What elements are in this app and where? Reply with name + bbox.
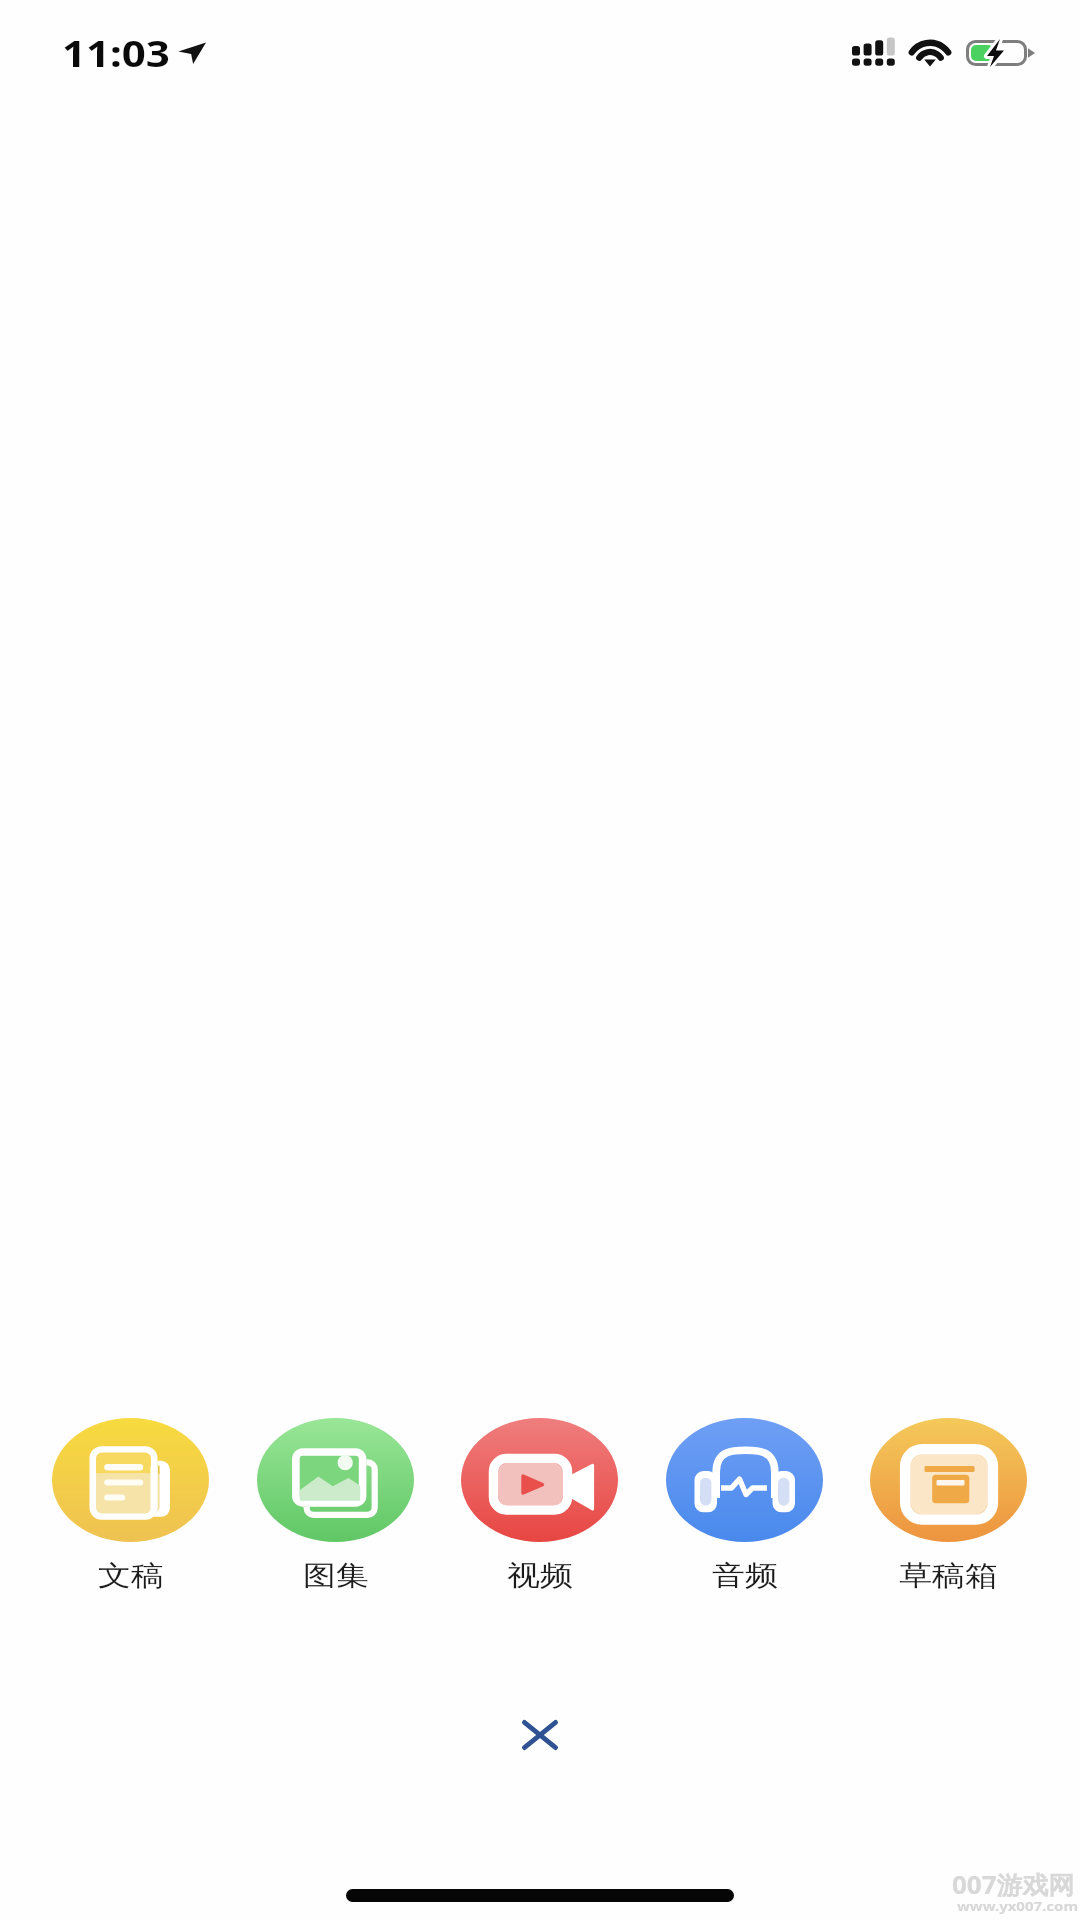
staticText: 文稿 bbox=[98, 1558, 164, 1594]
staticText: 音频 bbox=[712, 1558, 778, 1594]
staticText: www.yx007.com bbox=[957, 1898, 1079, 1914]
button[interactable]: 文稿 bbox=[52, 1418, 209, 1602]
staticText: 11:03 bbox=[62, 28, 170, 77]
button[interactable]: 视频 bbox=[461, 1418, 618, 1602]
button[interactable]: 草稿箱 bbox=[870, 1418, 1027, 1602]
staticText: 草稿箱 bbox=[899, 1558, 998, 1594]
staticText: 007游戏网 bbox=[952, 1867, 1075, 1901]
button[interactable]: 音频 bbox=[666, 1418, 823, 1602]
staticText: 图集 bbox=[303, 1558, 369, 1594]
staticText: 视频 bbox=[507, 1558, 573, 1594]
button[interactable]: 关闭 bbox=[490, 1685, 590, 1785]
button[interactable]: 图集 bbox=[257, 1418, 414, 1602]
